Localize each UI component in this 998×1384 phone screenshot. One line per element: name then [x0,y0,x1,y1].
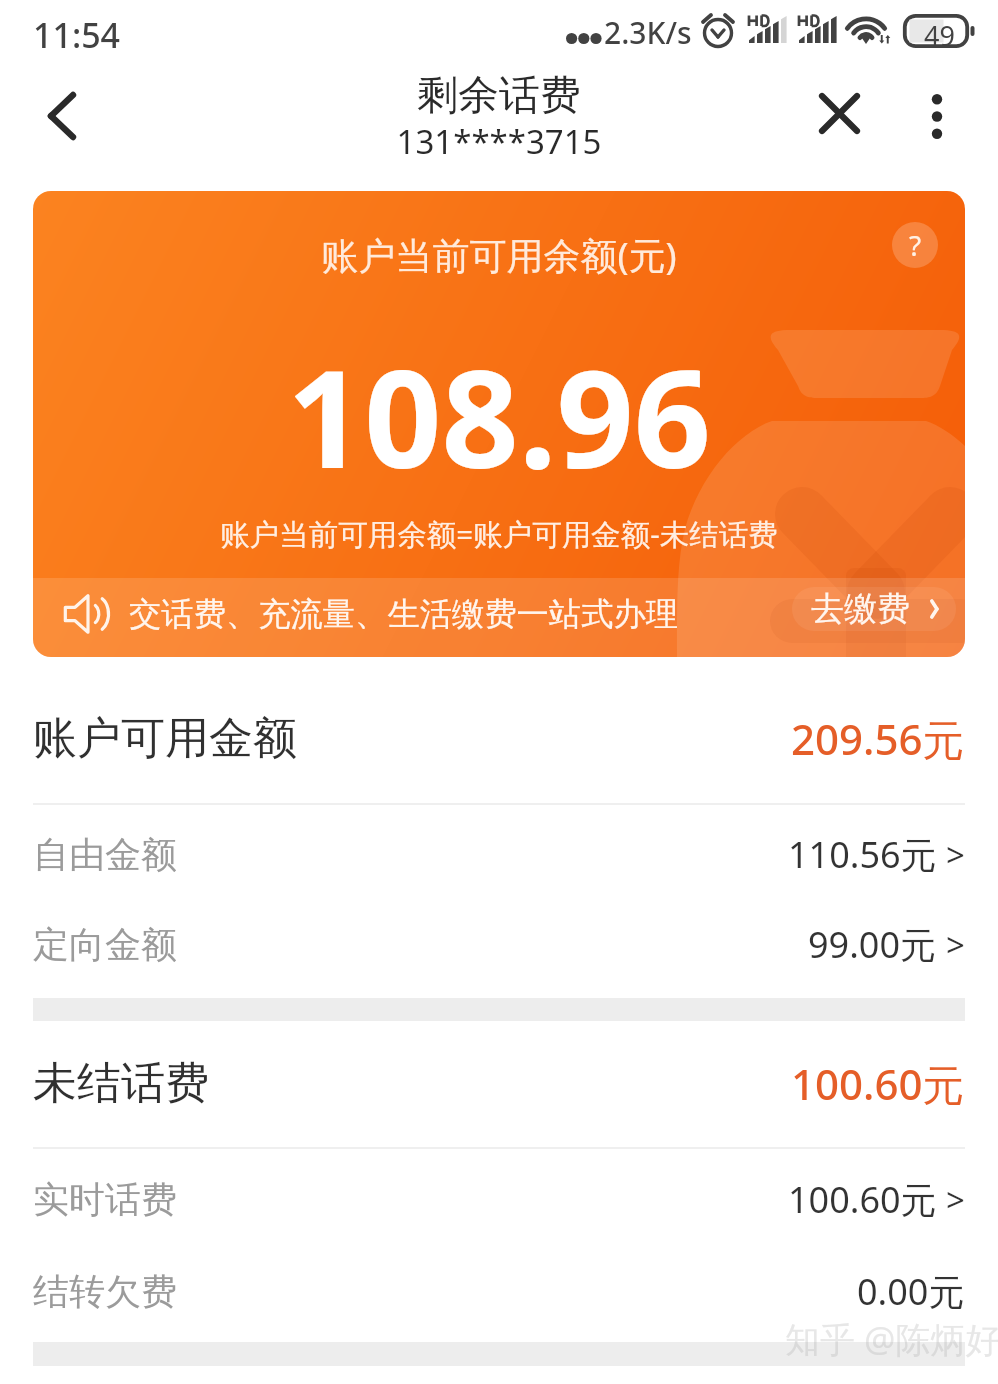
button[interactable]: 更多 [897,70,977,182]
button[interactable]: 交话费、充流量、生活缴费一站式办理 [33,578,965,657]
staticText: 100.60元 [791,1055,965,1112]
staticText: 100.60元 [788,1175,937,1224]
button[interactable]: 定向金额 [0,898,998,990]
staticText: 账户当前可用余额=账户可用金额-未结话费 [33,513,965,553]
staticText: 交话费、充流量、生活缴费一站式办理 [129,594,679,635]
staticText: 实时话费 [33,1177,177,1222]
staticText: 11:54 [33,12,121,58]
staticText: 剩余话费 [0,70,998,122]
staticText: 自由金额 [33,832,177,877]
button[interactable]: 返回 [10,70,114,182]
button[interactable]: 未结话费 [0,1037,998,1129]
button[interactable]: 自由金额 [0,808,998,900]
staticText: 209.56元 [791,710,965,767]
staticText: > [946,832,965,877]
button[interactable]: 账户可用金额 [0,692,998,784]
staticText: 定向金额 [33,922,177,967]
staticText: > [946,922,965,967]
staticText: 0.00元 [857,1267,965,1316]
staticText: 未结话费 [33,1056,209,1111]
staticText: 去缴费 [811,588,910,630]
button[interactable]: 去缴费 [792,587,956,631]
staticText: 2.3K/s [604,12,692,53]
staticText: 110.56元 [788,830,937,879]
staticText: 账户可用金额 [33,711,297,766]
staticText: 知乎 @陈炳好 [785,1315,998,1363]
staticText: 账户当前可用余额(元) [33,229,965,280]
staticText: 结转欠费 [33,1269,177,1314]
staticText: 49 [924,17,955,54]
staticText: ? [909,226,922,264]
staticText: > [946,1177,965,1222]
staticText: 99.00元 [808,920,937,969]
button[interactable]: 实时话费 [0,1153,998,1245]
button[interactable]: 关闭 [796,70,884,182]
button[interactable]: 帮助 [892,222,938,268]
button[interactable]: 结转欠费 [0,1245,998,1337]
staticText: 108.96 [33,324,965,508]
staticText: 131****3715 [0,119,998,164]
